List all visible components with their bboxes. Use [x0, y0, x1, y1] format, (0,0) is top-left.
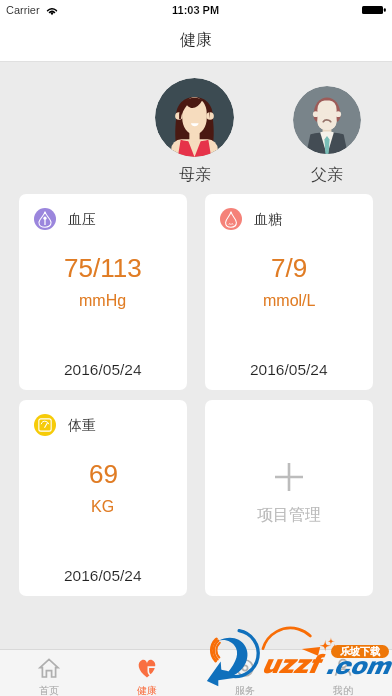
staticText: 血压 — [68, 211, 96, 229]
staticText: 服务 — [235, 684, 255, 696]
staticText: 项目管理 — [257, 505, 321, 525]
button[interactable]: 项目管理 添加 — [205, 400, 373, 596]
staticText: 健康 — [180, 30, 212, 50]
button[interactable]: 血压 — [19, 194, 187, 390]
staticText: Carrier — [6, 4, 40, 16]
staticText: 乐坡下载 — [340, 645, 380, 658]
button[interactable]: 我的 — [294, 650, 392, 696]
button[interactable] — [293, 86, 361, 154]
staticText: KG — [91, 498, 115, 516]
button[interactable]: 血糖 — [205, 194, 373, 390]
button[interactable]: 服务 — [196, 650, 294, 696]
button[interactable]: 首页 — [0, 650, 98, 696]
staticText: 2016/05/24 — [250, 361, 328, 378]
staticText: 2016/05/24 — [64, 567, 142, 584]
staticText: mmol/L — [263, 292, 316, 310]
staticText: 11:03 PM — [172, 4, 220, 16]
staticText: uzzf — [261, 650, 318, 678]
button[interactable]: 健康 — [98, 650, 196, 696]
button[interactable]: 体重 — [19, 400, 187, 596]
staticText: 我的 — [333, 684, 353, 696]
staticText: 首页 — [39, 684, 59, 696]
staticText: 父亲 — [311, 165, 343, 185]
staticText: 7/9 — [271, 253, 308, 282]
staticText: 母亲 — [179, 165, 211, 185]
staticText: .com — [325, 653, 390, 679]
staticText: 体重 — [68, 417, 96, 435]
staticText: mmHg — [79, 292, 127, 310]
staticText: 2016/05/24 — [64, 361, 142, 378]
button[interactable] — [155, 78, 234, 157]
staticText: 69 — [89, 459, 118, 488]
staticText: 健康 — [137, 684, 157, 696]
staticText: 75/113 — [64, 253, 142, 282]
staticText: 血糖 — [254, 211, 282, 229]
